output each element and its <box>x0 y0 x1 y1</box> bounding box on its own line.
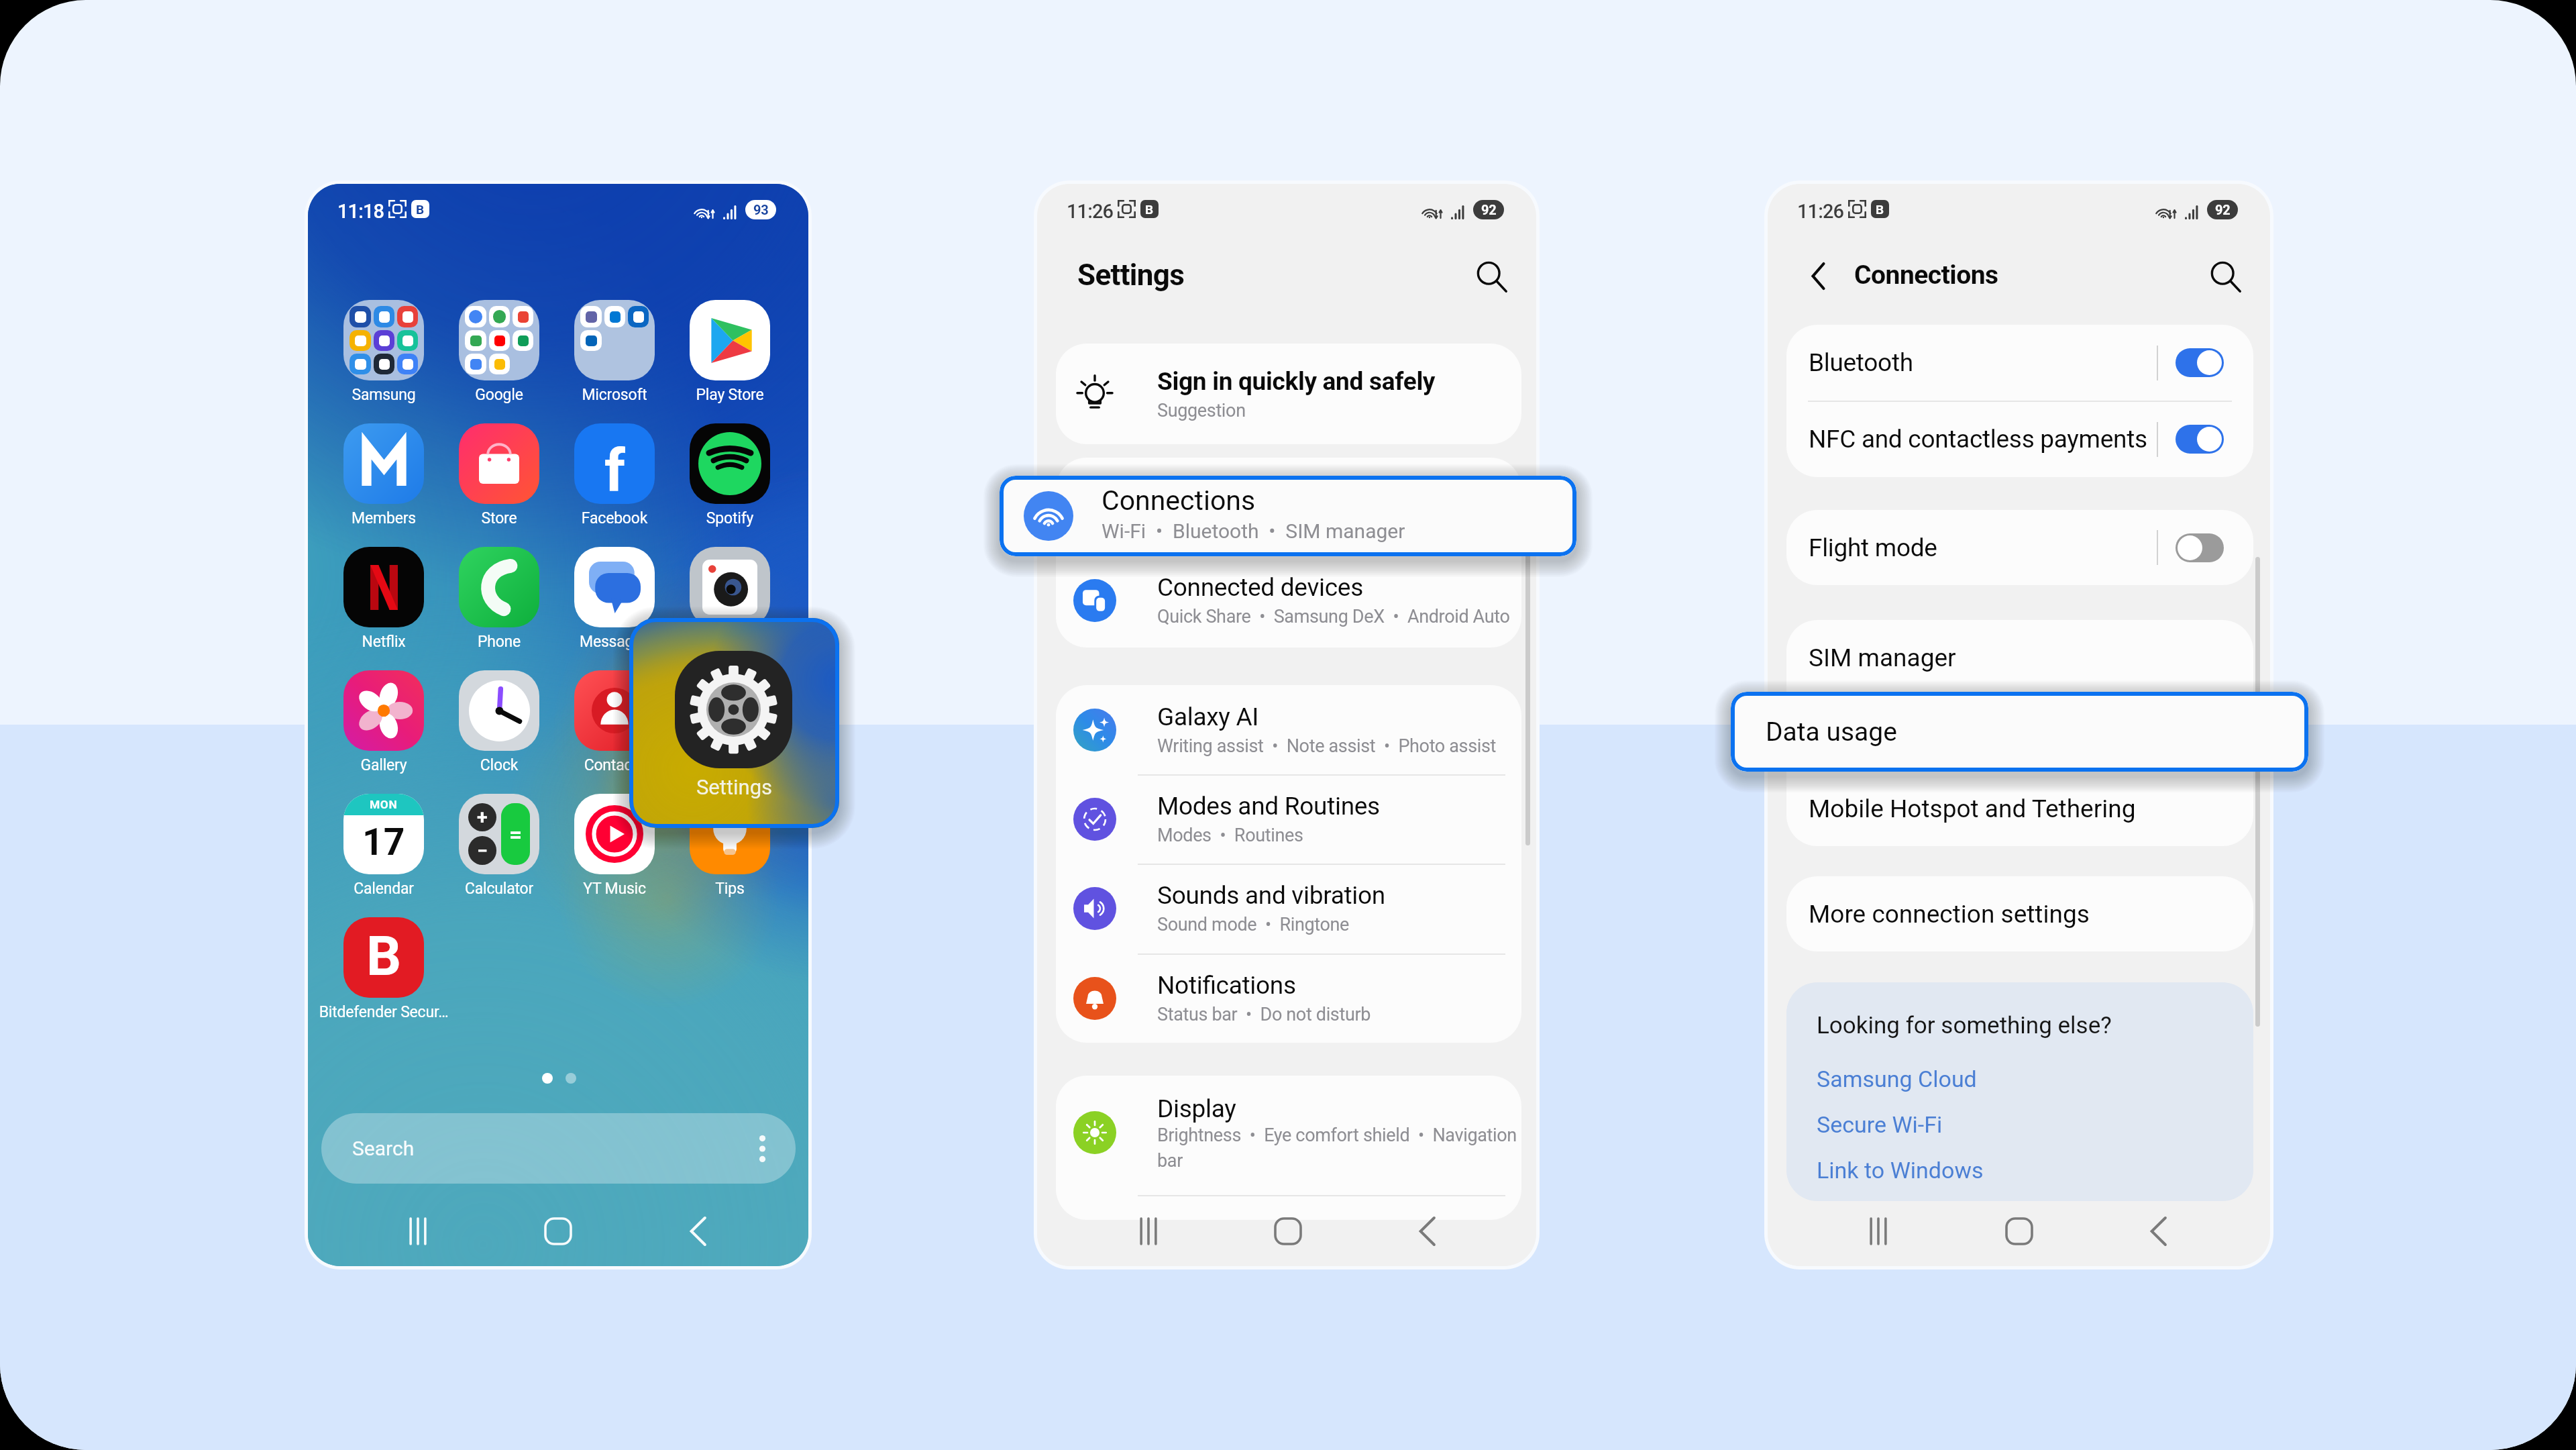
button[interactable] <box>326 300 441 415</box>
staticText: 92 <box>1481 202 1497 217</box>
staticText: Settings <box>1077 258 1185 293</box>
staticText: 11:26 <box>1067 200 1114 220</box>
button[interactable] <box>672 423 788 539</box>
button[interactable]: Connected devices <box>1056 553 1521 648</box>
button[interactable] <box>441 423 557 539</box>
button[interactable]: Modes and Routines <box>1056 774 1521 864</box>
button[interactable]: Samsung Cloud <box>1786 1056 2253 1102</box>
button[interactable]: Bluetooth <box>1786 325 2253 401</box>
button[interactable]: Recents <box>1848 1201 1909 1261</box>
staticText: Store <box>432 509 566 527</box>
button[interactable]: More options <box>743 1130 781 1168</box>
button[interactable]: Data usage <box>1786 695 2253 770</box>
staticText: B <box>1876 202 1884 217</box>
staticText: Looking for something else? <box>1817 1012 2112 1039</box>
staticText: Settings <box>629 775 839 799</box>
staticText: 92 <box>2215 202 2231 217</box>
staticText: Samsung Cloud <box>1817 1066 1977 1092</box>
button[interactable] <box>441 547 557 662</box>
button[interactable]: Connections <box>1056 458 1521 553</box>
staticText: NFC and contactless payments <box>1809 425 2147 454</box>
staticText: Quick Share • Samsung DeX • Android Auto <box>1157 606 1510 627</box>
button[interactable]: Flight mode <box>1786 510 2253 585</box>
button[interactable] <box>557 670 672 786</box>
button[interactable]: NFC and contactless payments <box>1786 401 2253 477</box>
staticText: Gallery <box>317 756 451 774</box>
button[interactable]: Back <box>668 1201 729 1261</box>
staticText: Galaxy AI <box>1157 703 1258 731</box>
staticText: − <box>477 839 488 862</box>
staticText: Sign in quickly and safely <box>1157 367 1436 396</box>
button[interactable] <box>441 300 557 415</box>
staticText: Connected devices <box>1157 573 1363 602</box>
button[interactable]: Home <box>1989 1201 2049 1261</box>
button[interactable]: B <box>326 917 441 1033</box>
button[interactable]: Sign in quickly and safely <box>1056 344 1521 444</box>
button[interactable]: Recents <box>1118 1201 1179 1261</box>
staticText: Tips <box>663 880 797 898</box>
staticText: Wi-Fi • Bluetooth • SIM manager <box>1157 511 1422 533</box>
staticText: Microsoft <box>547 386 682 404</box>
button[interactable]: Search <box>321 1113 796 1184</box>
button[interactable] <box>557 547 672 662</box>
button[interactable]: f <box>557 423 672 539</box>
staticText: Facebook <box>547 509 682 527</box>
button[interactable] <box>557 794 672 909</box>
button[interactable] <box>672 547 788 662</box>
button[interactable] <box>326 423 441 539</box>
button[interactable]: Notifications <box>1056 953 1521 1043</box>
button[interactable]: Link to Windows <box>1786 1147 2253 1193</box>
button[interactable]: Secure Wi-Fi <box>1786 1102 2253 1147</box>
button[interactable]: MON <box>326 794 441 909</box>
staticText: Samsung <box>317 386 451 404</box>
button[interactable]: Recents <box>388 1201 448 1261</box>
button[interactable]: Back <box>2129 1201 2189 1261</box>
staticText: Members <box>317 509 451 527</box>
staticText: Google <box>432 386 566 404</box>
button[interactable]: SIM manager <box>1786 620 2253 695</box>
staticText: Connections <box>1854 260 1998 291</box>
staticText: YT Music <box>547 880 682 898</box>
button[interactable]: Connections <box>1000 476 1576 556</box>
staticText: Sound mode • Ringtone <box>1157 914 1350 935</box>
button[interactable]: More connection settings <box>1786 876 2253 951</box>
staticText: Display <box>1157 1094 1236 1123</box>
staticText: Bitdefender Secur… <box>317 1003 451 1021</box>
button[interactable]: Home <box>528 1201 588 1261</box>
staticText: Camera <box>663 633 797 651</box>
staticText: f <box>604 437 625 504</box>
button[interactable] <box>672 300 788 415</box>
staticText: Status bar • Do not disturb <box>1157 1004 1371 1025</box>
staticText: Phone <box>432 633 566 651</box>
button[interactable] <box>557 300 672 415</box>
button[interactable]: Back <box>1802 260 1834 292</box>
staticText: + <box>477 806 488 829</box>
staticText: Play Store <box>663 386 797 404</box>
staticText: 11:26 <box>1797 200 1844 220</box>
staticText: Spotify <box>663 509 797 527</box>
button[interactable]: Sounds and vibration <box>1056 864 1521 953</box>
staticText: MON <box>370 798 398 811</box>
staticText: 17 <box>362 821 405 864</box>
button[interactable]: Data usage <box>1731 692 2308 772</box>
button[interactable]: Mobile Hotspot and Tethering <box>1786 771 2253 846</box>
button[interactable] <box>326 670 441 786</box>
button[interactable]: + <box>441 794 557 909</box>
button[interactable] <box>441 670 557 786</box>
button[interactable]: Galaxy AI <box>1056 685 1521 774</box>
button[interactable]: Home <box>1258 1201 1318 1261</box>
button[interactable] <box>326 547 441 662</box>
staticText: Clock <box>432 756 566 774</box>
staticText: Data usage <box>1809 719 1933 747</box>
button[interactable]: Back <box>1397 1201 1458 1261</box>
staticText: Data usage <box>1766 717 1897 747</box>
button[interactable]: Settings <box>629 618 839 828</box>
staticText: Wi-Fi • Bluetooth • SIM manager <box>1102 519 1405 543</box>
staticText: Messages <box>547 633 682 651</box>
button[interactable]: Display <box>1056 1076 1521 1190</box>
staticText: Sounds and vibration <box>1157 881 1385 910</box>
button[interactable]: Search <box>2207 258 2245 296</box>
staticText: B <box>366 924 402 988</box>
button[interactable] <box>672 794 788 909</box>
button[interactable]: Search <box>1473 258 1511 296</box>
